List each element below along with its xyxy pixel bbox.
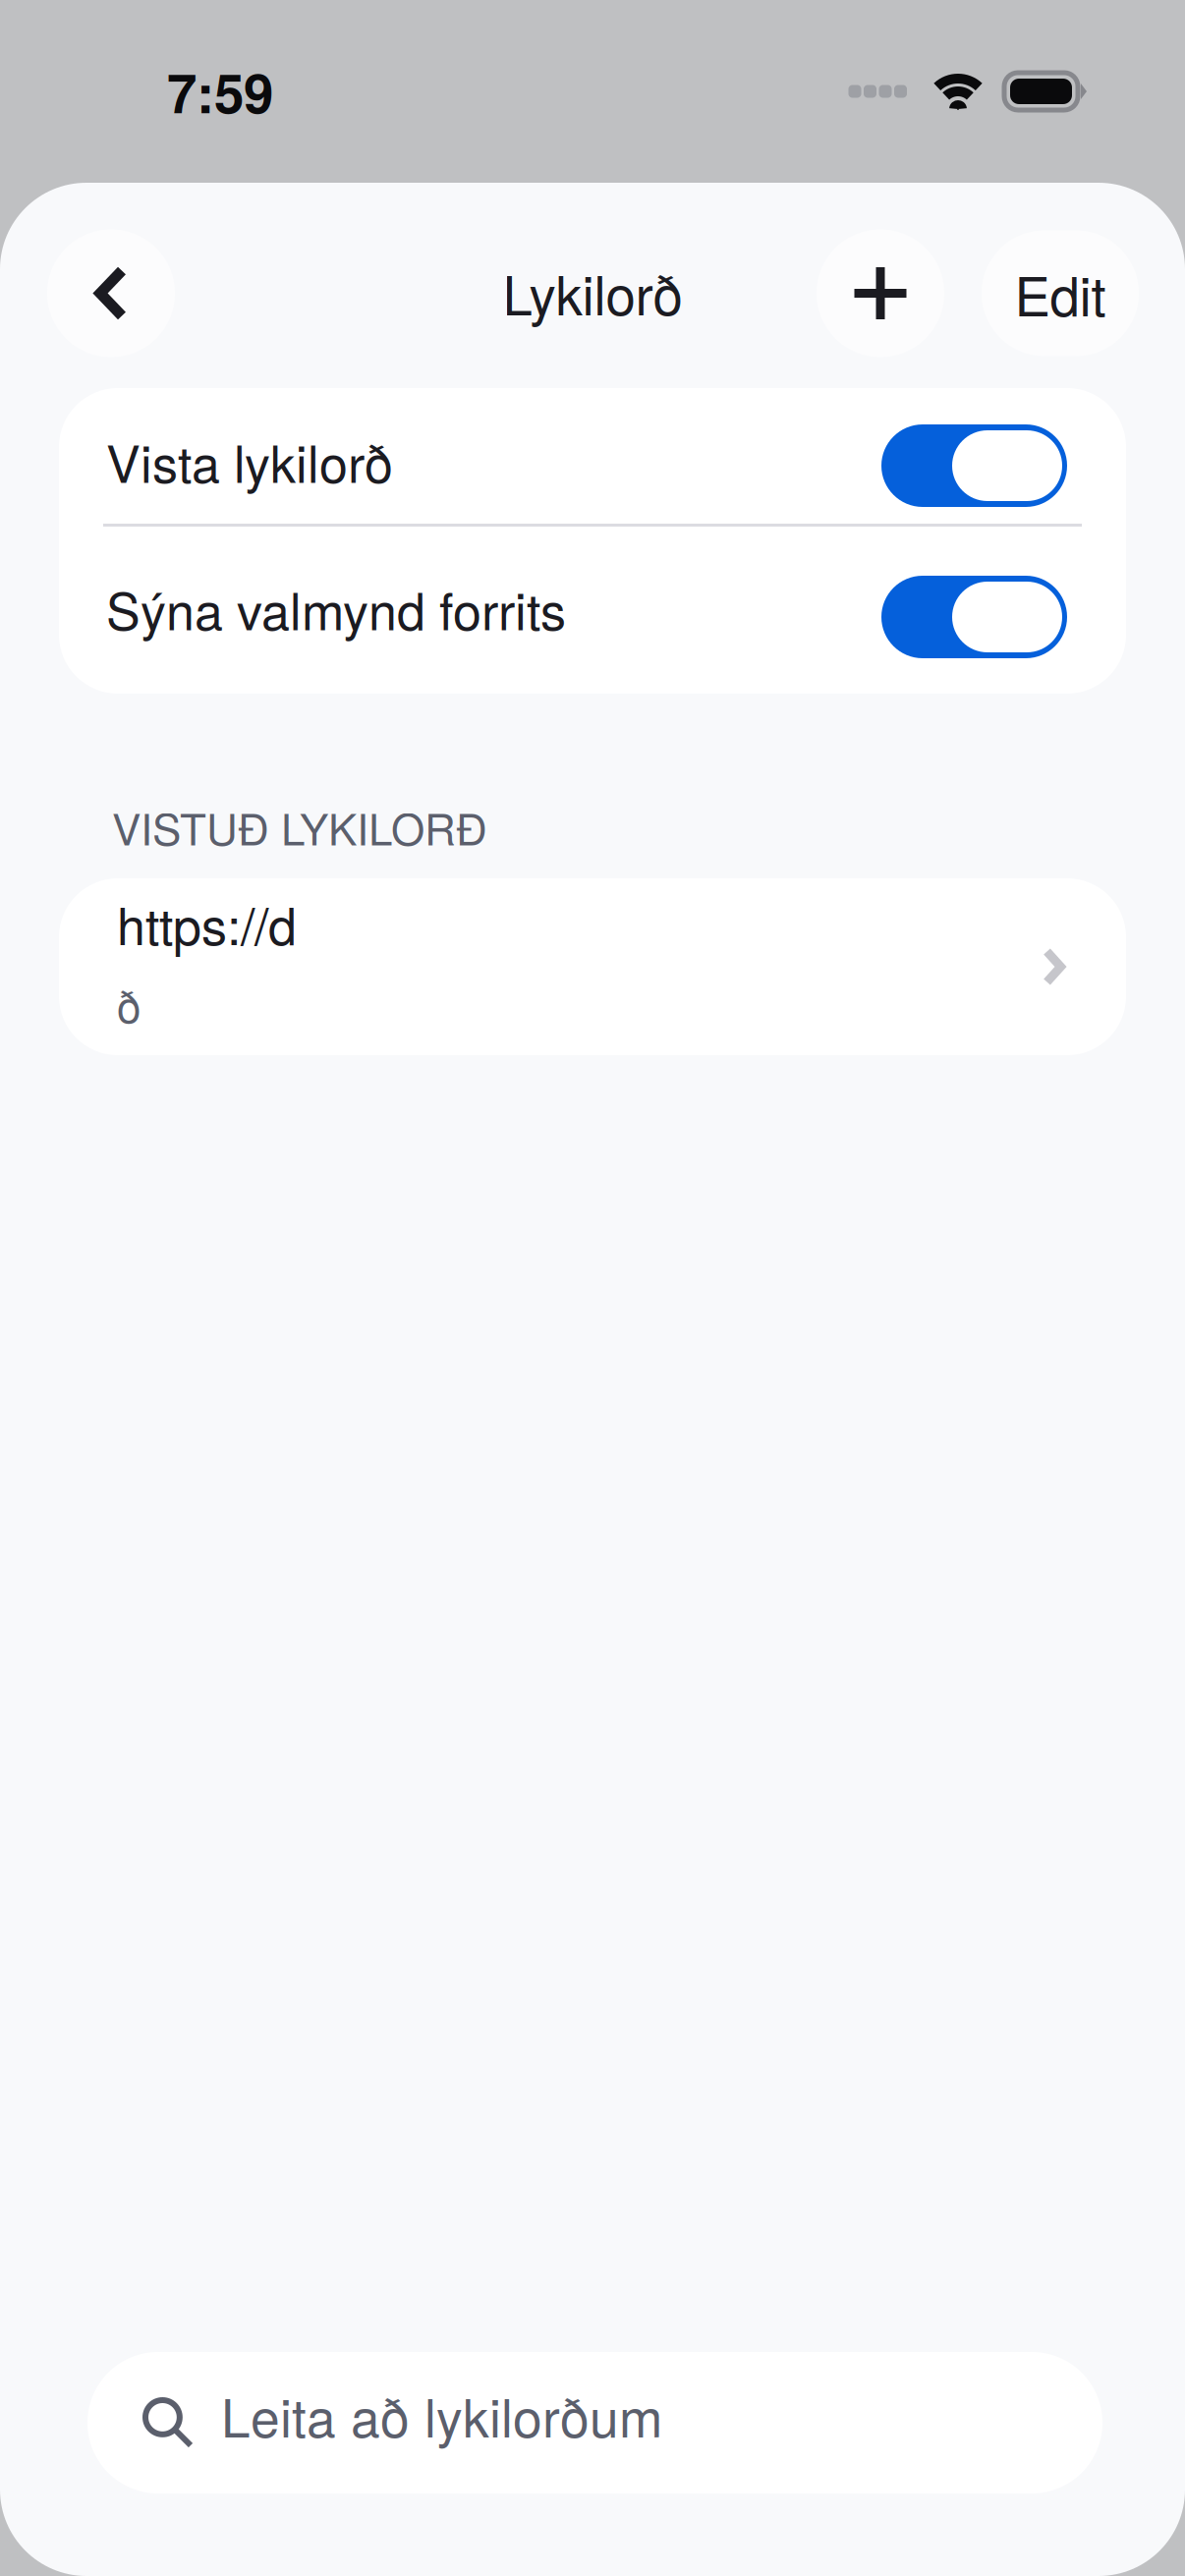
button[interactable]: Add password (817, 229, 944, 357)
button[interactable]: Leita að lykilorðum (87, 2352, 1102, 2493)
staticText: Edit (1015, 255, 1106, 332)
button[interactable]: Sýna valmynd forrits (59, 527, 1126, 694)
staticText: Vista lykilorð (106, 424, 393, 497)
staticText: Sýna valmynd forrits (106, 572, 566, 645)
staticText: Lykilorð (503, 254, 682, 331)
button[interactable]: Back (47, 229, 175, 357)
staticText: VISTUÐ LYKILORÐ (112, 796, 487, 858)
button[interactable]: Edit (982, 230, 1139, 356)
staticText: 7:59 (167, 53, 273, 130)
staticText: https://d (117, 886, 297, 960)
staticText: ð (117, 973, 141, 1035)
button[interactable]: Vista lykilorð (59, 388, 1126, 524)
button[interactable]: https://d (59, 878, 1126, 1055)
staticText: Leita að lykilorðum (221, 2377, 662, 2452)
